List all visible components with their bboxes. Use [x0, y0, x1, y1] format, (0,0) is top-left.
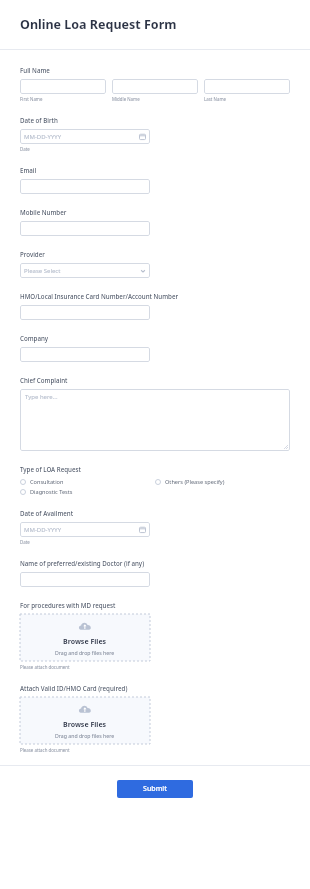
button[interactable]: Browse Files [20, 697, 150, 744]
staticText: Please Select [24, 267, 61, 275]
staticText: Name of preferred/existing Doctor (if an… [20, 559, 145, 567]
staticText: Diagnostic Tests [30, 488, 73, 496]
staticText: Mobile Number [20, 208, 67, 216]
button[interactable]: Browse Files [20, 614, 150, 661]
staticText: Drag and drop files here [55, 732, 115, 739]
staticText: Type here... [25, 393, 58, 401]
button[interactable] [112, 79, 198, 94]
staticText: Date [20, 146, 30, 152]
staticText: Chief Complaint [20, 376, 68, 384]
button[interactable]: MM-DD-YYYY [20, 522, 150, 537]
staticText: Date [20, 539, 30, 545]
button[interactable] [204, 79, 290, 94]
button[interactable]: Diagnostic Tests [20, 487, 73, 497]
staticText: MM-DD-YYYY [24, 526, 62, 534]
staticText: Online Loa Request Form [20, 16, 177, 33]
staticText: Company [20, 334, 49, 342]
button[interactable] [20, 572, 150, 587]
staticText: Last Name [204, 96, 226, 102]
staticText: Others (Please specify) [165, 478, 225, 486]
button[interactable]: Type here... [20, 389, 290, 451]
button[interactable] [20, 347, 150, 362]
staticText: Drag and drop files here [55, 649, 115, 656]
staticText: Email [20, 166, 37, 174]
staticText: Browse Files [63, 637, 107, 647]
staticText: Provider [20, 250, 45, 258]
button[interactable]: MM-DD-YYYY [20, 129, 150, 144]
staticText: For procedures with MD request [20, 601, 116, 609]
staticText: Browse Files [63, 720, 107, 730]
button[interactable]: Others (Please specify) [155, 477, 225, 487]
staticText: First Name [20, 96, 43, 102]
staticText: Please attach document [20, 747, 70, 753]
button[interactable] [20, 221, 150, 236]
button[interactable] [20, 79, 106, 94]
button[interactable] [20, 305, 150, 320]
staticText: Full Name [20, 66, 50, 74]
staticText: Date of Availment [20, 509, 74, 517]
staticText: MM-DD-YYYY [24, 133, 62, 141]
staticText: Submit [143, 784, 167, 794]
staticText: Date of Birth [20, 116, 58, 124]
staticText: HMO/Local Insurance Card Number/Account … [20, 292, 179, 300]
button[interactable]: Consultation [20, 477, 64, 487]
staticText: Type of LOA Request [20, 465, 81, 473]
staticText: Attach Valid ID/HMO Card (required) [20, 684, 128, 692]
button[interactable]: Submit [117, 780, 193, 798]
button[interactable] [20, 179, 150, 194]
staticText: Please attach document [20, 664, 70, 670]
button[interactable]: Please Select [20, 263, 150, 278]
staticText: Consultation [30, 478, 64, 486]
staticText: Middle Name [112, 96, 140, 102]
